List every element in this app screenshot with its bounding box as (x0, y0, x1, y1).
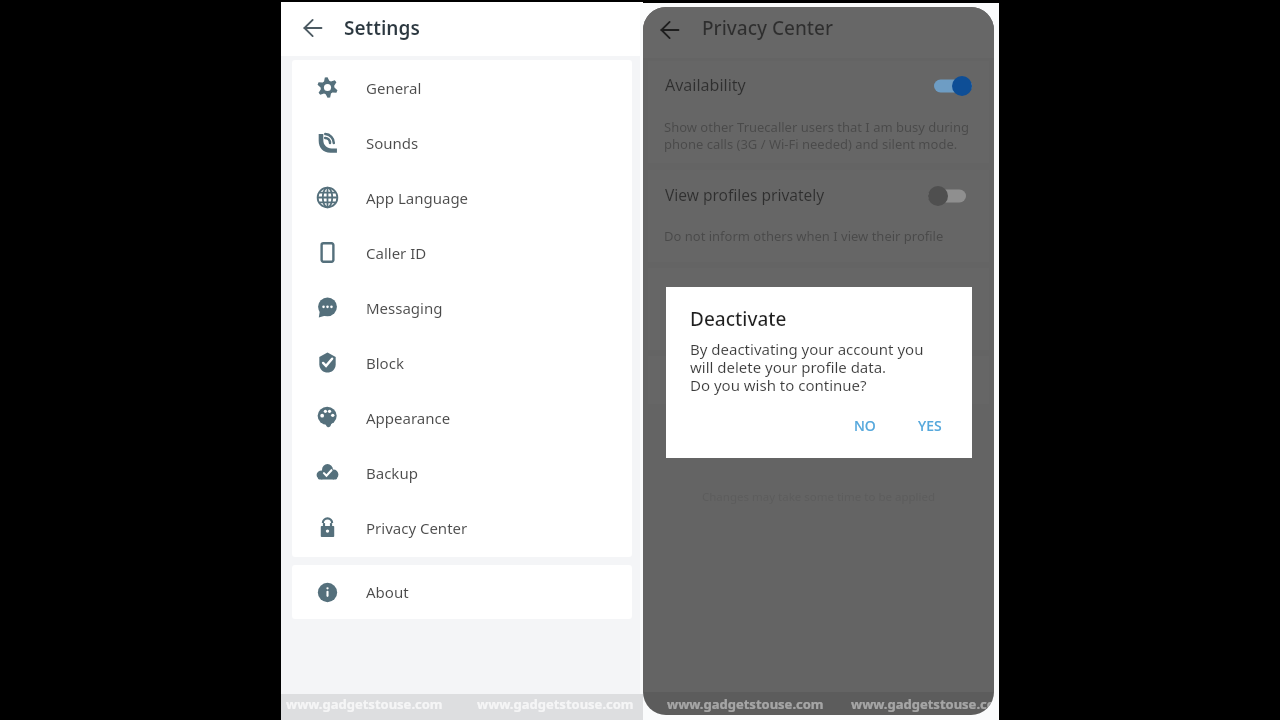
staticText: Privacy Center (366, 518, 468, 538)
button[interactable]: Sounds (292, 115, 632, 170)
staticText: Privacy Center (702, 15, 834, 41)
staticText: www.gadgetstouse.com (851, 695, 994, 713)
staticText: App Language (366, 188, 469, 208)
staticText: View profiles privately (665, 184, 825, 205)
staticText: Show other Truecaller users that I am bu… (664, 118, 970, 153)
staticText: General (366, 78, 422, 98)
button[interactable]: Back (300, 15, 326, 41)
button[interactable]: Privacy Center (292, 500, 632, 555)
button[interactable]: Backup (292, 445, 632, 500)
button[interactable]: Caller ID (292, 225, 632, 280)
staticText: Do not inform others when I view their p… (664, 227, 944, 245)
staticText: Availability (665, 74, 746, 96)
staticText: Backup (366, 463, 418, 483)
staticText: Messaging (366, 298, 443, 318)
button[interactable]: About (292, 565, 632, 619)
staticText: Settings (344, 15, 420, 41)
staticText: By deactivating your account you will de… (690, 339, 924, 396)
button[interactable]: YES (908, 410, 952, 441)
staticText: About (366, 582, 409, 602)
staticText: Appearance (366, 408, 451, 428)
button[interactable]: Messaging (292, 280, 632, 335)
button[interactable]: View profiles privately (648, 170, 989, 218)
button[interactable]: General (292, 60, 632, 115)
staticText: www.gadgetstouse.com (667, 695, 824, 713)
staticText: Caller ID (366, 243, 427, 263)
staticText: NO (854, 416, 876, 435)
staticText: Sounds (366, 133, 419, 153)
button[interactable]: App Language (292, 170, 632, 225)
staticText: www.gadgetstouse.com (286, 695, 443, 713)
staticText: www.gadgetstouse.com (477, 695, 634, 713)
button[interactable]: Toggle on (934, 75, 972, 97)
button[interactable]: NO (844, 410, 886, 441)
button[interactable]: Block (292, 335, 632, 390)
staticText: Block (366, 353, 404, 373)
button[interactable]: Toggle off (928, 185, 966, 207)
staticText: YES (918, 416, 942, 435)
button[interactable]: Appearance (292, 390, 632, 445)
button[interactable]: Back (654, 14, 685, 45)
button[interactable]: Availability (648, 61, 989, 109)
staticText: Deactivate (690, 306, 787, 332)
